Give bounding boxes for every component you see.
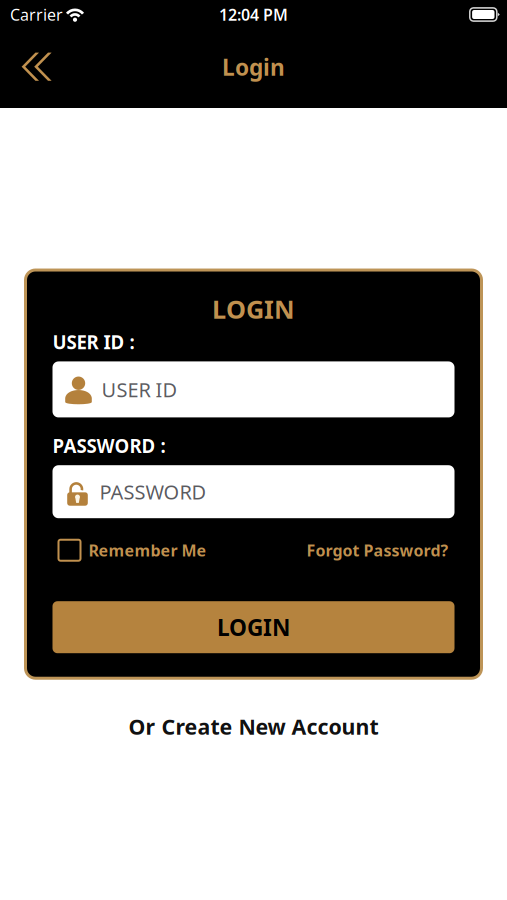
- staticText: Remember Me: [88, 540, 206, 561]
- staticText: Forgot Password?: [306, 540, 448, 561]
- staticText: PASSWORD :: [52, 433, 165, 458]
- button[interactable]: Or Create New Account: [128, 712, 378, 740]
- button[interactable]: Remember Me: [58, 540, 206, 561]
- staticText: 12:04 PM: [219, 4, 288, 25]
- button[interactable]: PASSWORD: [52, 465, 454, 518]
- staticText: USER ID :: [52, 330, 134, 354]
- staticText: Carrier: [10, 4, 63, 25]
- staticText: PASSWORD: [99, 478, 206, 505]
- staticText: LOGIN: [217, 612, 290, 642]
- button[interactable]: Forgot Password?: [306, 540, 448, 561]
- button[interactable]: USER ID: [52, 361, 454, 417]
- button[interactable]: LOGIN: [52, 601, 454, 653]
- staticText: Login: [222, 52, 285, 82]
- button[interactable]: Back: [0, 40, 64, 94]
- staticText: USER ID: [101, 376, 177, 403]
- staticText: Or Create New Account: [128, 712, 378, 740]
- staticText: LOGIN: [212, 292, 295, 326]
